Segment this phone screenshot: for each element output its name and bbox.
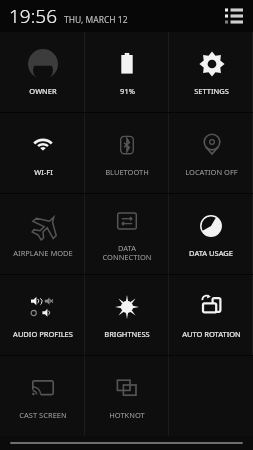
button[interactable]: HOTKNOT <box>85 356 169 436</box>
button[interactable]: AUTO ROTATION <box>169 275 253 355</box>
button[interactable]: Quick settings list <box>223 5 245 27</box>
staticText: 91% <box>120 86 135 96</box>
staticText: SETTINGS <box>194 86 229 96</box>
staticText: WI-FI <box>34 167 53 177</box>
button[interactable]: BRIGHTNESS <box>85 275 169 355</box>
staticText: AUDIO PROFILES <box>13 329 73 339</box>
button[interactable]: BLUETOOTH <box>85 113 169 193</box>
button[interactable]: LOCATION OFF <box>169 113 253 193</box>
button[interactable]: AIRPLANE MODE <box>0 194 85 274</box>
staticText: LOCATION OFF <box>185 167 238 177</box>
button[interactable]: DATA CONNECTION <box>85 194 169 274</box>
staticText: BRIGHTNESS <box>104 329 150 339</box>
staticText: HOTKNOT <box>109 410 145 420</box>
staticText: THU, MARCH 12 <box>64 14 128 26</box>
button[interactable]: OWNER <box>0 32 85 112</box>
staticText: 19:56 <box>9 3 58 29</box>
button[interactable]: CAST SCREEN <box>0 356 85 436</box>
button[interactable]: 91% <box>85 32 169 112</box>
staticText: CAST SCREEN <box>19 410 67 420</box>
staticText: AUTO ROTATION <box>182 329 241 339</box>
staticText: OWNER <box>29 86 57 96</box>
button[interactable]: SETTINGS <box>169 32 253 112</box>
staticText: AIRPLANE MODE <box>13 248 73 258</box>
staticText: BLUETOOTH <box>105 167 149 177</box>
staticText: DATA CONNECTION <box>102 243 152 262</box>
button[interactable]: DATA USAGE <box>169 194 253 274</box>
button[interactable]: AUDIO PROFILES <box>0 275 85 355</box>
staticText: DATA USAGE <box>189 248 233 258</box>
button[interactable]: WI-FI <box>0 113 85 193</box>
